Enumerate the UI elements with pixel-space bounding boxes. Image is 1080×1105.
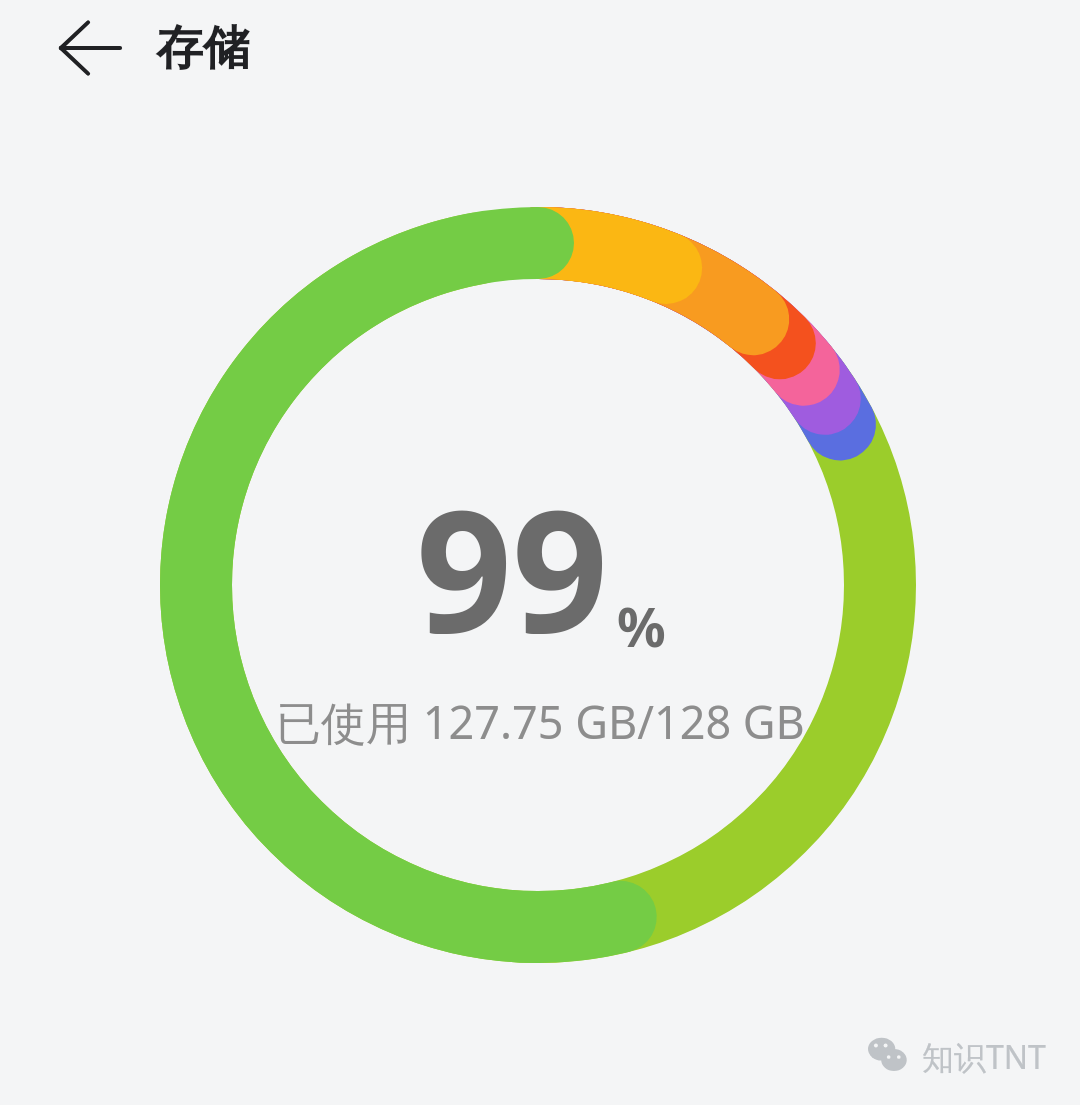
staticText: % bbox=[617, 589, 666, 663]
staticText: 99 bbox=[416, 452, 609, 681]
button[interactable]: Back bbox=[48, 6, 132, 90]
staticText: 知识TNT bbox=[922, 1035, 1046, 1079]
staticText: 已使用 127.75 GB/128 GB bbox=[276, 691, 805, 752]
staticText: 存储 bbox=[156, 19, 250, 78]
